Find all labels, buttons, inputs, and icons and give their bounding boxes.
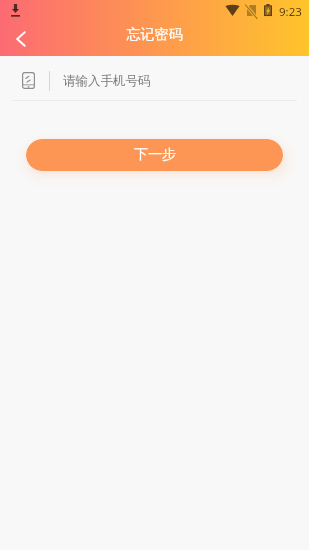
- staticText: 下一步: [134, 146, 176, 164]
- button[interactable]: 请输入手机号码: [0, 56, 309, 100]
- staticText: 9:23: [279, 4, 302, 20]
- button[interactable]: Back: [0, 22, 42, 56]
- staticText: 忘记密码: [0, 26, 309, 44]
- staticText: 请输入手机号码: [63, 73, 151, 89]
- button[interactable]: 下一步: [26, 139, 283, 171]
